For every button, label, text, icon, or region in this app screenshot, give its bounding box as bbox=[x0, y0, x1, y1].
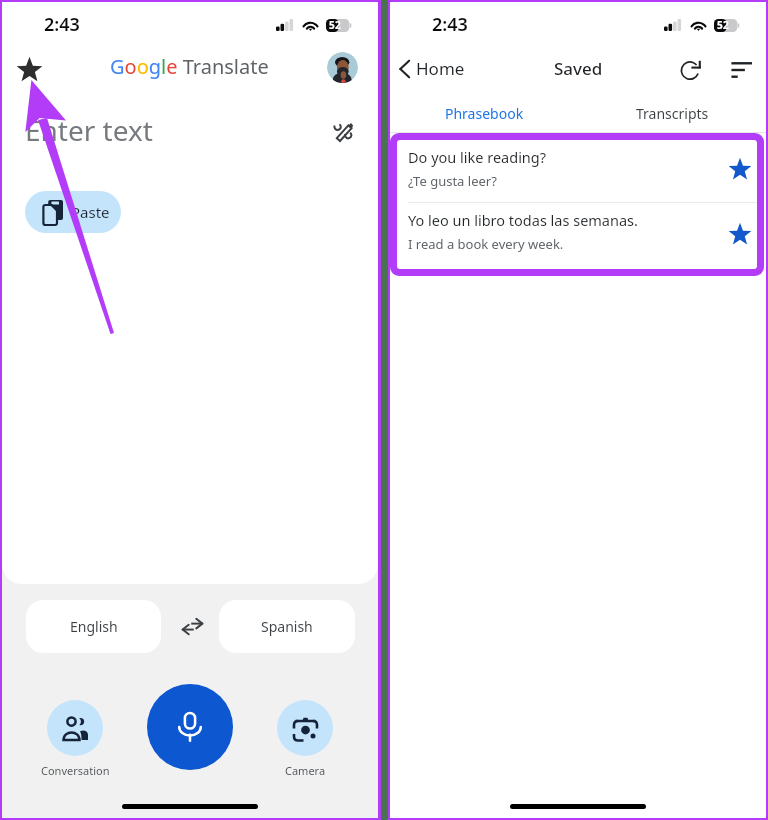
staticText: Google Translate bbox=[110, 53, 269, 80]
staticText: Enter text bbox=[25, 111, 153, 149]
button[interactable]: Handwriting bbox=[332, 119, 356, 143]
button[interactable]: Favorite bbox=[724, 218, 756, 250]
staticText: 5 bbox=[329, 18, 335, 32]
button[interactable]: Home bbox=[390, 53, 473, 88]
staticText: Camera bbox=[285, 763, 326, 778]
button[interactable]: English bbox=[26, 600, 161, 653]
staticText: Paste bbox=[71, 202, 110, 222]
staticText: English bbox=[70, 617, 118, 636]
button[interactable]: Paste bbox=[25, 191, 121, 233]
staticText: 2:43 bbox=[432, 12, 468, 37]
staticText: 2 bbox=[723, 18, 729, 32]
button[interactable]: Yo leo un libro todas las semanas. bbox=[397, 203, 757, 268]
staticText: ¿Te gusta leer? bbox=[408, 172, 497, 190]
staticText: Transcripts bbox=[636, 104, 709, 123]
staticText: Spanish bbox=[261, 617, 313, 636]
button[interactable]: Camera bbox=[277, 700, 333, 790]
button[interactable]: Account bbox=[327, 52, 358, 83]
staticText: Yo leo un libro todas las semanas. bbox=[408, 210, 638, 230]
button[interactable]: Conversation bbox=[47, 700, 103, 790]
staticText: 2 bbox=[335, 18, 341, 32]
staticText: 2:43 bbox=[44, 12, 80, 37]
staticText: I read a book every week. bbox=[408, 235, 564, 253]
button[interactable]: Microphone bbox=[147, 684, 233, 770]
button[interactable]: Transcripts bbox=[578, 94, 766, 132]
staticText: Home bbox=[416, 57, 465, 80]
staticText: Conversation bbox=[41, 763, 110, 778]
staticText: Do you like reading? bbox=[408, 147, 547, 167]
staticText: Phrasebook bbox=[445, 104, 524, 123]
staticText: 5 bbox=[717, 18, 723, 32]
button[interactable]: Saved phrases bbox=[6, 50, 47, 91]
button[interactable]: Phrasebook bbox=[390, 94, 578, 132]
button[interactable]: Swap languages bbox=[171, 614, 213, 638]
button[interactable]: Do you like reading? bbox=[397, 140, 757, 202]
button[interactable]: Sort bbox=[724, 53, 758, 87]
button[interactable]: Favorite bbox=[724, 153, 756, 185]
button[interactable]: Spanish bbox=[219, 600, 355, 653]
staticText: Saved bbox=[554, 57, 603, 80]
button[interactable]: Refresh bbox=[674, 53, 708, 87]
